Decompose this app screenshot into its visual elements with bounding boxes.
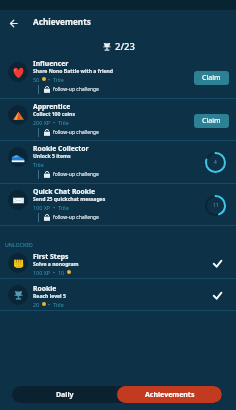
staticText: follow-up challenge [53,171,99,178]
staticText: Title [58,204,69,211]
button[interactable]: Daily [12,386,117,403]
staticText: 20 [33,301,40,308]
staticText: • [53,119,56,126]
staticText: Claim [202,116,221,126]
button[interactable]: Quick Chat Rookie [0,184,236,226]
staticText: Achievements [33,16,91,27]
staticText: Reach level 5 [33,293,66,300]
staticText: Send 25 quickchat messages [33,196,106,203]
staticText: UNLOCKED [5,241,33,248]
staticText: follow-up challenge [53,214,99,221]
staticText: Solve a nonogram [33,261,79,268]
staticText: Apprentice [33,102,71,111]
staticText: 50 [33,76,40,83]
staticText: follow-up challenge [53,129,99,136]
staticText: • [48,76,51,83]
staticText: Achievements [145,390,195,400]
staticText: Share Nono Battle with a friend [33,68,114,75]
button[interactable]: Influencer [0,56,236,98]
staticText: 4 [214,159,217,166]
button[interactable]: Claim [194,71,229,85]
button[interactable]: Rookie [0,279,236,311]
staticText: Rookie [33,284,57,293]
staticText: Daily [56,390,74,400]
staticText: First Steps [33,252,69,261]
staticText: 200 XP [33,119,51,126]
staticText: Title [58,119,69,126]
button[interactable]: First Steps [0,247,236,279]
staticText: Title [53,301,64,308]
staticText: • [48,301,51,308]
button[interactable]: Apprentice [0,99,236,141]
staticText: Title [53,76,64,83]
staticText: Influencer [33,59,69,68]
staticText: Title [33,161,44,168]
staticText: 100 XP [33,269,51,276]
staticText: Unlock 5 items [33,153,71,160]
staticText: • [53,269,56,276]
staticText: Quick Chat Rookie [33,187,96,196]
staticText: 11 [213,202,219,209]
staticText: Claim [202,73,221,83]
button[interactable]: Rookie Collector [0,141,236,183]
staticText: • [53,204,56,211]
button[interactable]: Completed [209,287,225,303]
button[interactable]: Back [2,12,24,34]
staticText: 2/23 [115,40,135,53]
staticText: Rookie Collector [33,144,89,153]
staticText: 100 XP [33,204,51,211]
button[interactable]: Achievements [117,386,222,403]
button[interactable]: Completed [209,255,225,271]
button[interactable]: Claim [194,114,229,128]
staticText: 10 [58,269,65,276]
staticText: follow-up challenge [53,86,99,93]
staticText: Collect 100 coins [33,111,75,118]
